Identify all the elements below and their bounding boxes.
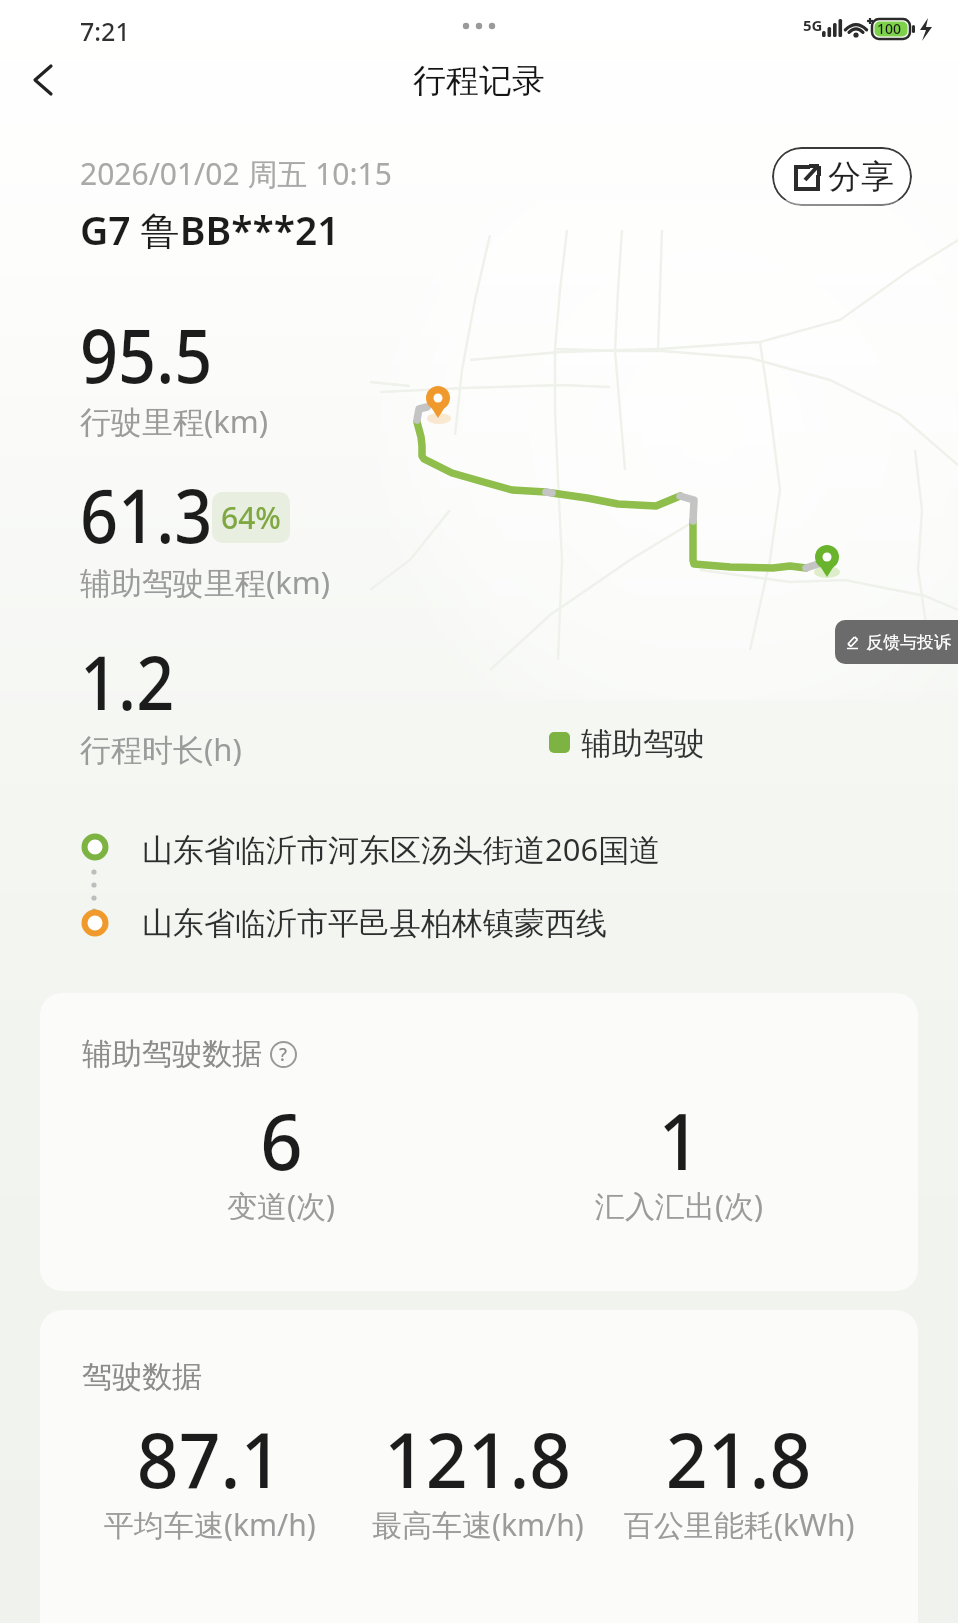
staticText: 5G bbox=[803, 15, 823, 35]
staticText: 汇入汇出(次) bbox=[595, 1185, 763, 1226]
staticText: G7 鲁BB***21 bbox=[80, 203, 340, 256]
staticText: 山东省临沂市平邑县柏林镇蒙西线 bbox=[142, 904, 607, 943]
button[interactable]: ? bbox=[270, 1041, 297, 1068]
staticText: 87.1 bbox=[137, 1406, 283, 1511]
staticText: 变道(次) bbox=[227, 1185, 335, 1226]
staticText: 7:21 bbox=[80, 14, 130, 48]
staticText: 100 bbox=[877, 19, 902, 38]
staticText: 辅助驾驶 bbox=[581, 724, 705, 763]
staticText: ? bbox=[279, 1042, 288, 1067]
staticText: 辅助驾驶里程(km) bbox=[80, 561, 331, 603]
staticText: 行程记录 bbox=[413, 60, 545, 102]
staticText: 64% bbox=[221, 497, 281, 538]
staticText: 行程时长(h) bbox=[80, 728, 242, 770]
staticText: 1 bbox=[658, 1087, 701, 1193]
staticText: 2026/01/02 周五 10:15 bbox=[80, 153, 392, 194]
staticText: 辅助驾驶数据 bbox=[82, 1035, 262, 1073]
staticText: 分享 bbox=[828, 156, 894, 198]
staticText: 行驶里程(km) bbox=[80, 400, 269, 442]
staticText: 95.5 bbox=[80, 304, 213, 405]
staticText: 最高车速(km/h) bbox=[372, 1504, 584, 1545]
staticText: 6 bbox=[260, 1087, 303, 1193]
staticText: 1.2 bbox=[80, 631, 174, 732]
button[interactable]: 反馈与投诉 bbox=[835, 620, 958, 664]
button[interactable]: 分享 bbox=[772, 147, 912, 206]
staticText: 反馈与投诉 bbox=[866, 632, 951, 653]
staticText: 百公里能耗(kWh) bbox=[624, 1504, 855, 1545]
staticText: 21.8 bbox=[666, 1406, 812, 1511]
staticText: 山东省临沂市河东区汤头街道206国道 bbox=[142, 828, 661, 870]
staticText: 驾驶数据 bbox=[82, 1358, 202, 1396]
button[interactable] bbox=[33, 64, 55, 96]
staticText: 121.8 bbox=[384, 1406, 572, 1511]
staticText: 61.3 bbox=[80, 464, 213, 565]
staticText: 平均车速(km/h) bbox=[104, 1504, 316, 1545]
